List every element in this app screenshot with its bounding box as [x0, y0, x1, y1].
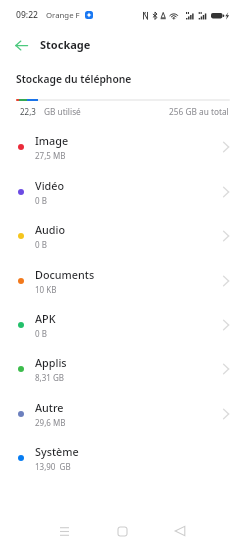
button[interactable]: Audio [0, 213, 245, 258]
button[interactable]: Back [9, 33, 33, 57]
staticText: 13,90 GB [35, 461, 71, 472]
staticText: APK [35, 311, 56, 326]
button[interactable]: Recent apps [46, 513, 82, 546]
button[interactable]: APK [0, 302, 245, 347]
staticText: Orange F [46, 10, 80, 21]
button[interactable]: Système [0, 435, 245, 480]
button[interactable]: Autre [0, 391, 245, 436]
staticText: Image [35, 133, 69, 148]
staticText: Autre [35, 400, 64, 415]
staticText: Documents [35, 267, 95, 282]
staticText: Stockage [40, 37, 91, 52]
staticText: Stockage du téléphone [16, 72, 132, 86]
staticText: 0 B [35, 328, 47, 339]
staticText: GB utilisé [44, 106, 81, 117]
staticText: Vidéo [35, 178, 65, 193]
staticText: Audio [35, 222, 66, 237]
staticText: 0 B [35, 195, 47, 206]
button[interactable]: Applis [0, 346, 245, 391]
button[interactable]: Back [162, 513, 198, 546]
staticText: 09:22 [16, 9, 39, 21]
staticText: 10 KB [35, 284, 57, 295]
button[interactable]: Vidéo [0, 169, 245, 214]
button[interactable]: Documents [0, 258, 245, 303]
button[interactable]: Home [104, 513, 140, 546]
staticText: 29,6 MB [35, 417, 66, 428]
button[interactable]: Image [0, 124, 245, 169]
staticText: 256 GB au total [169, 106, 229, 117]
staticText: 8,31 GB [35, 372, 64, 383]
staticText: 27,5 MB [35, 150, 66, 161]
staticText: Système [35, 444, 79, 459]
staticText: 22,3 [20, 106, 36, 117]
staticText: 0 B [35, 239, 47, 250]
staticText: Applis [35, 355, 67, 370]
